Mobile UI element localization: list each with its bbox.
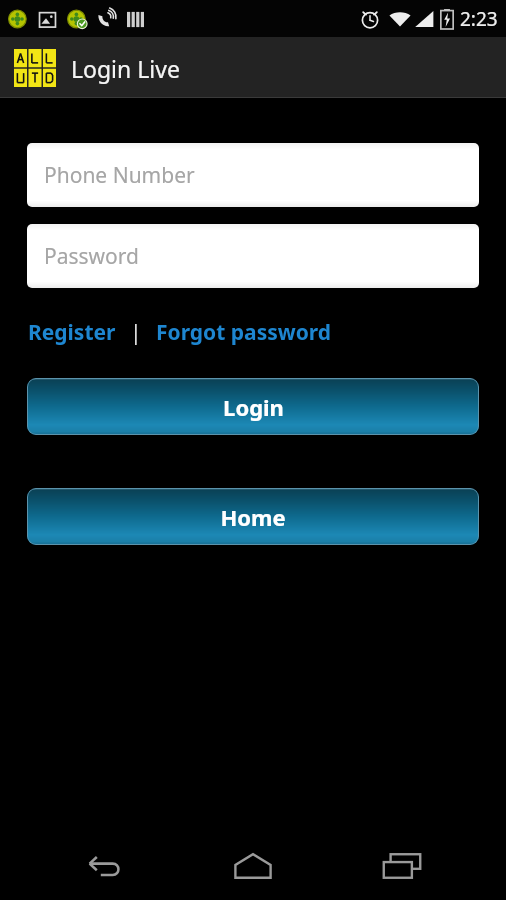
staticText: Login Live xyxy=(71,53,180,84)
button[interactable]: Login xyxy=(27,378,479,435)
button[interactable]: Forgot password xyxy=(156,318,332,347)
button[interactable]: Register xyxy=(28,318,116,347)
button[interactable]: Password xyxy=(27,224,479,288)
staticText: Home xyxy=(220,502,286,532)
staticText: Login xyxy=(223,392,284,422)
button[interactable]: Home xyxy=(27,488,479,545)
button[interactable]: Recent apps xyxy=(357,832,447,900)
button[interactable]: Phone Number xyxy=(27,143,479,207)
staticText: 2:23 xyxy=(460,6,498,32)
staticText: | xyxy=(130,318,142,347)
staticText: Register xyxy=(28,318,116,347)
staticText: Password xyxy=(44,242,139,271)
button[interactable]: Back xyxy=(59,832,149,900)
staticText: Phone Number xyxy=(44,161,195,190)
button[interactable]: Home xyxy=(208,832,298,900)
staticText: Forgot password xyxy=(156,318,332,347)
